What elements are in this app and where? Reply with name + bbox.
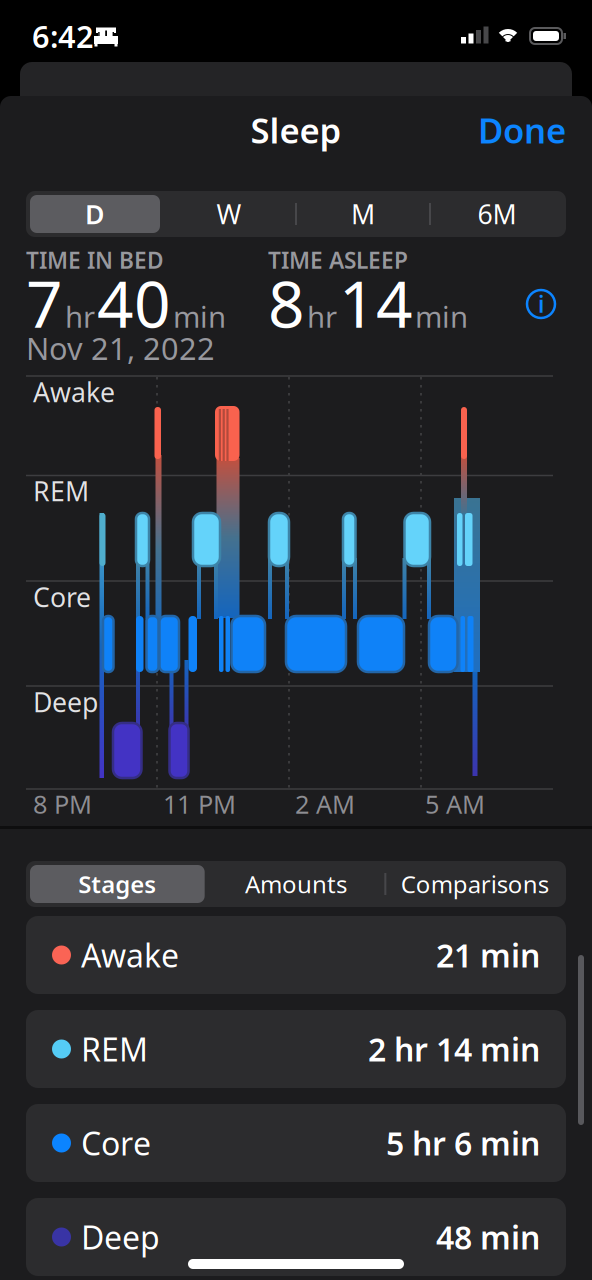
button[interactable]: Stages: [28, 861, 207, 907]
staticText: Nov 21, 2022: [26, 328, 215, 368]
staticText: 6:42: [32, 16, 94, 56]
staticText: hr: [307, 297, 337, 336]
staticText: Amounts: [245, 868, 347, 900]
staticText: 5 hr 6 min: [386, 1122, 540, 1164]
staticText: 2 AM: [295, 787, 355, 821]
button[interactable]: W: [162, 191, 296, 237]
button[interactable]: REM: [26, 1010, 566, 1088]
staticText: Core: [33, 579, 91, 615]
staticText: min: [415, 297, 468, 336]
staticText: Deep: [33, 684, 98, 720]
staticText: Stages: [78, 868, 156, 900]
button[interactable]: Done: [466, 106, 566, 154]
button[interactable]: Core: [26, 1104, 566, 1182]
staticText: Deep: [81, 1216, 160, 1258]
staticText: 14: [339, 260, 413, 345]
staticText: 40: [97, 260, 171, 345]
staticText: Done: [478, 107, 566, 153]
button[interactable]: Awake: [26, 916, 566, 994]
staticText: W: [216, 196, 241, 232]
staticText: D: [85, 196, 105, 232]
staticText: 11 PM: [163, 787, 236, 821]
staticText: TIME IN BED: [26, 245, 164, 275]
staticText: Core: [81, 1122, 151, 1164]
staticText: M: [351, 196, 375, 232]
staticText: 21 min: [436, 934, 540, 976]
button[interactable]: D: [28, 191, 162, 237]
staticText: min: [173, 297, 226, 336]
button[interactable]: Deep: [26, 1198, 566, 1276]
staticText: hr: [65, 297, 95, 336]
staticText: 2 hr 14 min: [368, 1028, 540, 1070]
staticText: 6M: [477, 196, 516, 232]
staticText: i: [538, 289, 544, 319]
button[interactable]: Info: [523, 286, 559, 322]
button[interactable]: Amounts: [207, 861, 385, 907]
staticText: 8 PM: [33, 787, 92, 821]
button[interactable]: 6M: [430, 191, 564, 237]
staticText: REM: [33, 473, 89, 509]
staticText: REM: [81, 1028, 148, 1070]
staticText: Sleep: [250, 107, 341, 153]
staticText: Awake: [81, 934, 179, 976]
button[interactable]: M: [296, 191, 430, 237]
staticText: 8: [268, 260, 305, 345]
staticText: 48 min: [436, 1216, 540, 1258]
staticText: Comparisons: [401, 868, 549, 900]
staticText: 7: [26, 260, 63, 345]
button[interactable]: Comparisons: [385, 861, 564, 907]
staticText: Awake: [33, 374, 115, 410]
staticText: TIME ASLEEP: [268, 245, 408, 275]
staticText: 5 AM: [425, 787, 485, 821]
